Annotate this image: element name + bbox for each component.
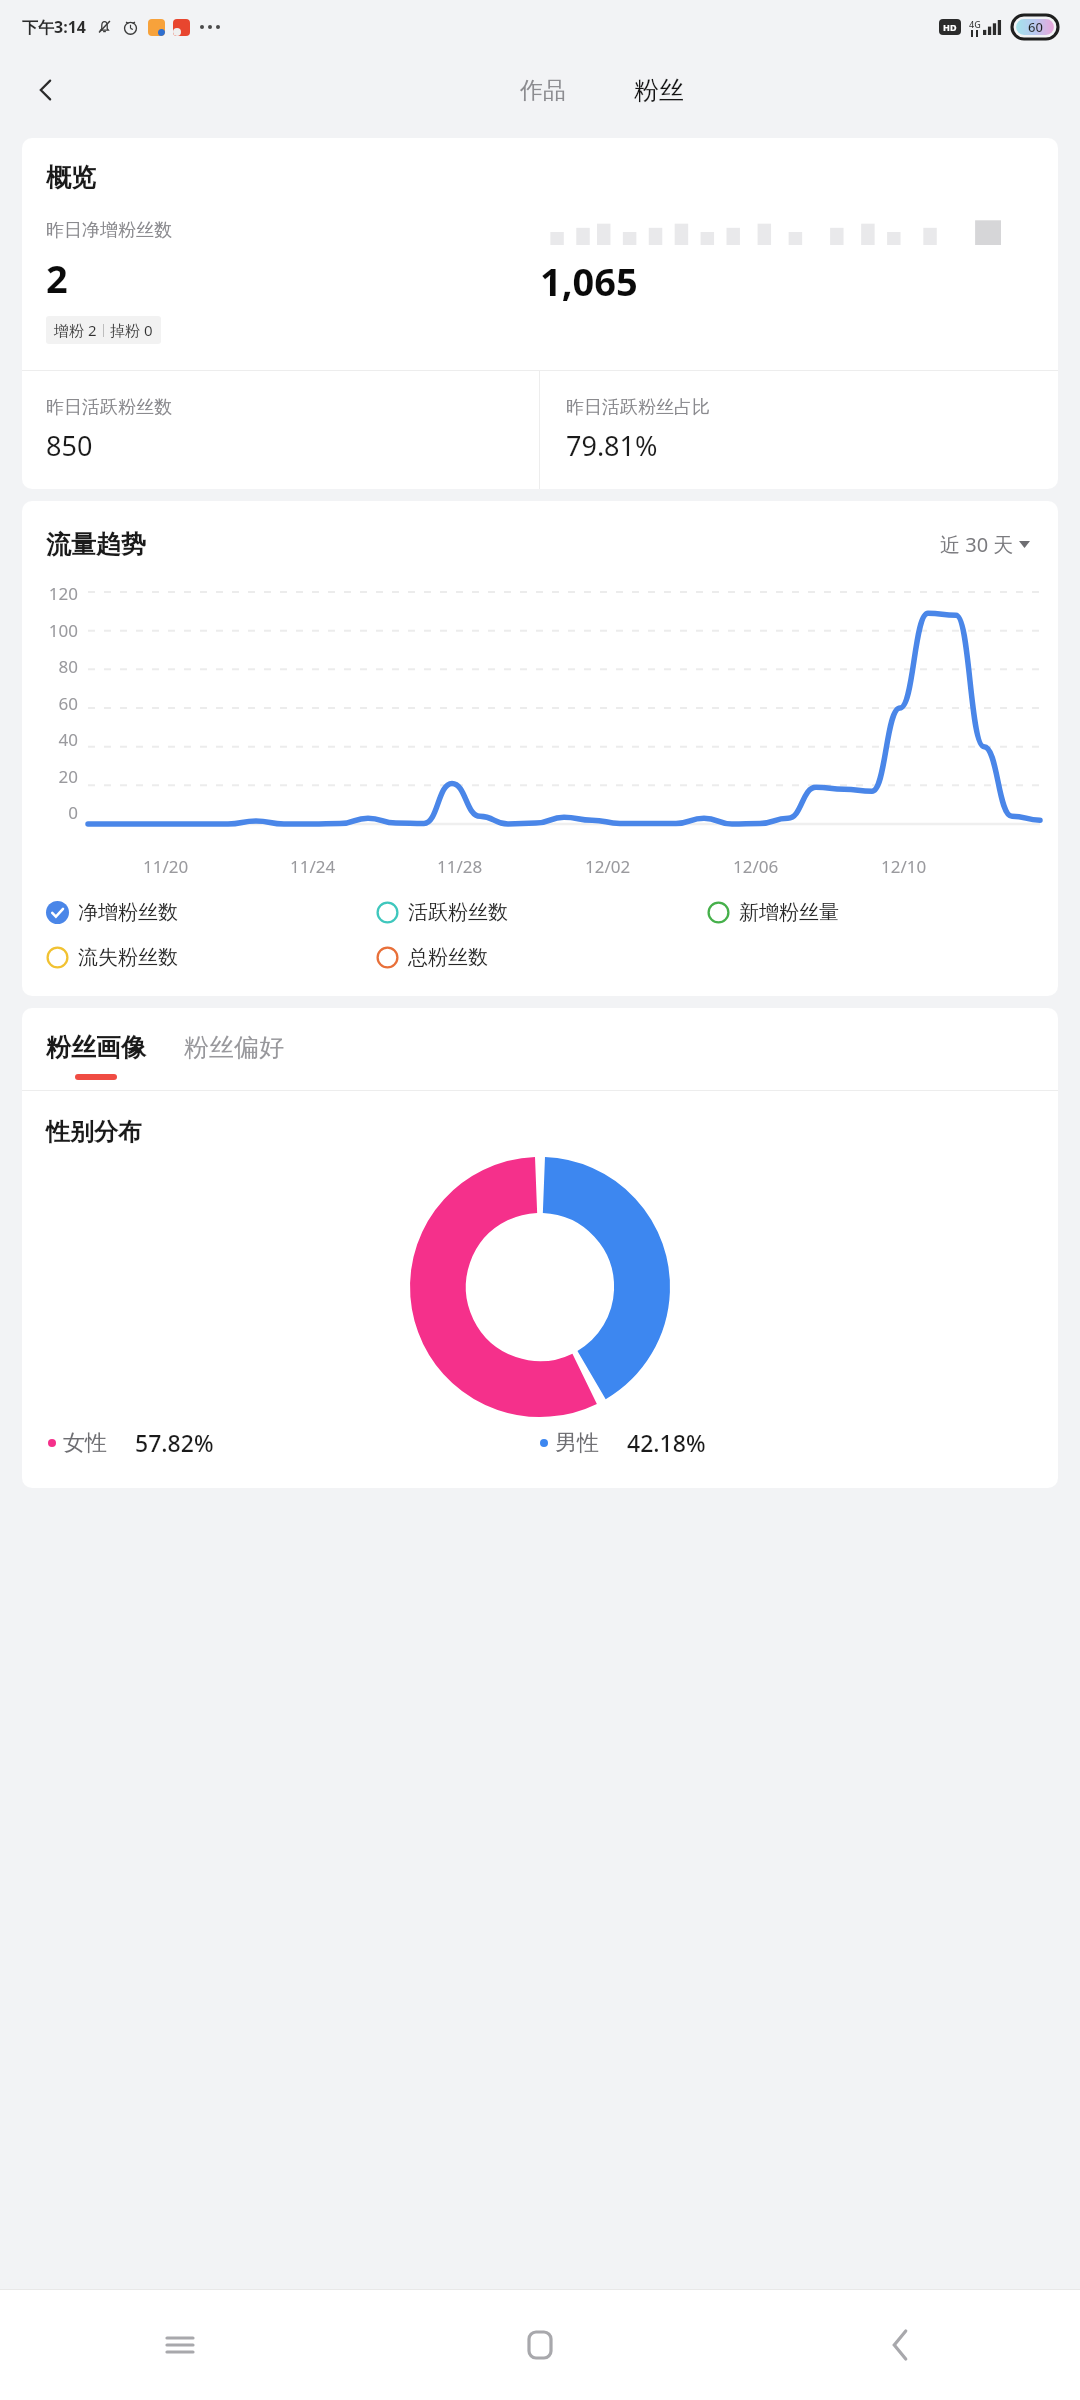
staticText: 100 bbox=[48, 619, 78, 642]
staticText: 79.81% bbox=[566, 427, 658, 464]
staticText: 80 bbox=[58, 655, 78, 678]
staticText: 女性 bbox=[63, 1429, 107, 1457]
staticText: 作品 bbox=[520, 76, 566, 105]
staticText: 昨日活跃粉丝占比 bbox=[566, 396, 710, 419]
button[interactable]: 总粉丝数 bbox=[376, 945, 707, 970]
staticText: 总粉丝数 bbox=[408, 945, 488, 970]
staticText: 男性 bbox=[555, 1429, 599, 1457]
button[interactable]: Home bbox=[360, 2290, 720, 2400]
staticText: 20 bbox=[58, 765, 78, 788]
staticText: 昨日净增粉丝数 bbox=[46, 219, 172, 242]
button[interactable]: 活跃粉丝数 bbox=[376, 900, 707, 925]
staticText: 11/20 bbox=[143, 855, 189, 878]
staticText: 60 bbox=[58, 692, 78, 715]
button[interactable]: 作品 bbox=[502, 68, 584, 113]
button[interactable]: Back bbox=[720, 2290, 1080, 2400]
staticText: 12/10 bbox=[881, 855, 927, 878]
staticText: 下午3:14 bbox=[22, 16, 86, 38]
staticText: 粉丝画像 bbox=[46, 1032, 146, 1063]
staticText: 40 bbox=[58, 728, 78, 751]
staticText: 4G bbox=[969, 18, 981, 30]
staticText: HD bbox=[943, 21, 957, 33]
button[interactable]: Back bbox=[22, 66, 70, 114]
button[interactable]: 流失粉丝数 bbox=[46, 945, 376, 970]
staticText: 120 bbox=[48, 582, 78, 605]
staticText: 850 bbox=[46, 427, 93, 464]
button[interactable]: 新增粉丝量 bbox=[707, 900, 1038, 925]
staticText: 57.82% bbox=[135, 1427, 214, 1458]
button[interactable]: 粉丝 bbox=[616, 67, 702, 114]
staticText: 60 bbox=[1028, 18, 1043, 36]
staticText: 近 30 天 bbox=[940, 531, 1014, 558]
staticText: 增粉 2 bbox=[54, 320, 97, 340]
staticText: 粉丝 bbox=[634, 75, 684, 106]
staticText: 净增粉丝数 bbox=[78, 900, 178, 925]
staticText: 11/28 bbox=[437, 855, 483, 878]
staticText: 11/24 bbox=[290, 855, 336, 878]
button[interactable]: 粉丝画像 bbox=[46, 1032, 146, 1080]
staticText: 粉丝偏好 bbox=[184, 1032, 284, 1063]
staticText: 新增粉丝量 bbox=[739, 900, 839, 925]
staticText: 2 bbox=[46, 252, 68, 304]
staticText: 1,065 bbox=[540, 255, 638, 307]
staticText: 流失粉丝数 bbox=[78, 945, 178, 970]
staticText: 概览 bbox=[46, 162, 96, 193]
button[interactable]: Menu bbox=[0, 2290, 360, 2400]
staticText: 0 bbox=[68, 801, 78, 824]
staticText: 42.18% bbox=[627, 1427, 706, 1458]
staticText: 性别分布 bbox=[46, 1117, 142, 1147]
staticText: 12/02 bbox=[585, 855, 631, 878]
staticText: 流量趋势 bbox=[46, 529, 146, 560]
staticText: 昨日活跃粉丝数 bbox=[46, 396, 172, 419]
staticText: 12/06 bbox=[733, 855, 779, 878]
staticText: 活跃粉丝数 bbox=[408, 900, 508, 925]
button[interactable]: 近 30 天 bbox=[934, 525, 1036, 564]
staticText: 掉粉 0 bbox=[110, 320, 153, 340]
button[interactable]: 净增粉丝数 bbox=[46, 900, 376, 925]
button[interactable]: 粉丝偏好 bbox=[184, 1032, 284, 1080]
